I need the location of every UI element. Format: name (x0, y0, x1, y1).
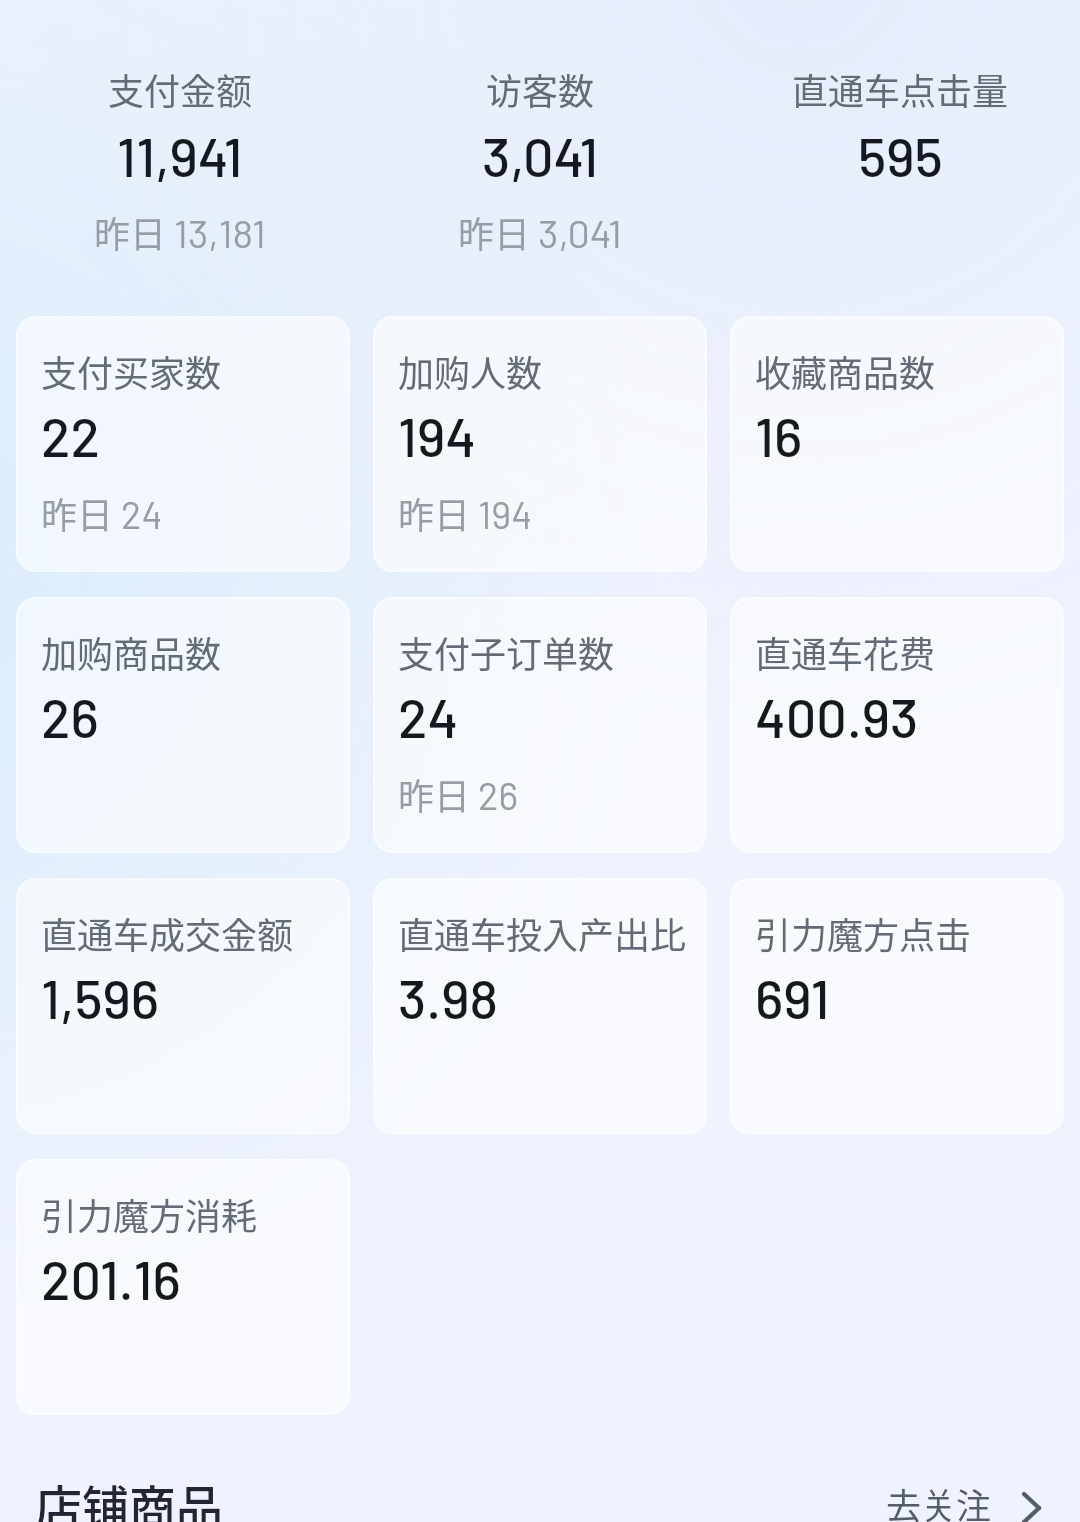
staticText: 直通车成交金额 (41, 907, 294, 959)
button[interactable]: 直通车点击量 (720, 40, 1080, 270)
staticText: 400.93 (755, 684, 919, 749)
staticText: 直通车投入产出比 (398, 907, 687, 959)
staticText: 加购商品数 (41, 626, 222, 678)
button[interactable]: 引力魔方点击 (730, 878, 1064, 1134)
button[interactable]: 加购人数 (373, 316, 707, 572)
button[interactable]: 加购商品数 (16, 597, 350, 853)
staticText: 店铺商品 (35, 1470, 223, 1522)
button[interactable]: 引力魔方消耗 (16, 1159, 350, 1415)
staticText: 26 (41, 684, 99, 749)
button[interactable]: 去关注 (870, 1466, 1060, 1522)
staticText: 201.16 (41, 1246, 181, 1311)
staticText: 支付买家数 (41, 345, 222, 397)
staticText: 3,041 (482, 123, 599, 188)
staticText: 22 (41, 403, 100, 468)
button[interactable]: 支付买家数 (16, 316, 350, 572)
button[interactable]: 支付金额 (0, 40, 360, 270)
staticText: 24 (398, 684, 459, 749)
staticText: 去关注 (886, 1478, 992, 1522)
staticText: 3.98 (398, 965, 498, 1030)
staticText: 直通车点击量 (792, 63, 1009, 115)
staticText: 引力魔方点击 (755, 907, 972, 959)
button[interactable]: 访客数 (360, 40, 720, 270)
staticText: 支付子订单数 (398, 626, 615, 678)
staticText: 691 (755, 965, 830, 1030)
staticText: 194 (398, 403, 477, 468)
staticText: 收藏商品数 (755, 345, 936, 397)
staticText: 595 (858, 123, 943, 188)
staticText: 昨日 26 (398, 768, 519, 820)
staticText: 16 (755, 403, 803, 468)
staticText: 昨日 3,041 (458, 206, 622, 258)
button[interactable]: 收藏商品数 (730, 316, 1064, 572)
button[interactable]: 支付子订单数 (373, 597, 707, 853)
staticText: 支付金额 (108, 63, 253, 115)
staticText: 加购人数 (398, 345, 543, 397)
staticText: 引力魔方消耗 (41, 1188, 258, 1240)
staticText: 昨日 13,181 (94, 206, 266, 258)
staticText: 昨日 194 (398, 487, 533, 539)
staticText: 1,596 (41, 965, 160, 1030)
staticText: 11,941 (117, 123, 243, 188)
staticText: 昨日 24 (41, 487, 163, 539)
staticText: 访客数 (486, 63, 595, 115)
button[interactable]: 直通车花费 (730, 597, 1064, 853)
button[interactable]: 直通车投入产出比 (373, 878, 707, 1134)
button[interactable]: 直通车成交金额 (16, 878, 350, 1134)
staticText: 直通车花费 (755, 626, 936, 678)
